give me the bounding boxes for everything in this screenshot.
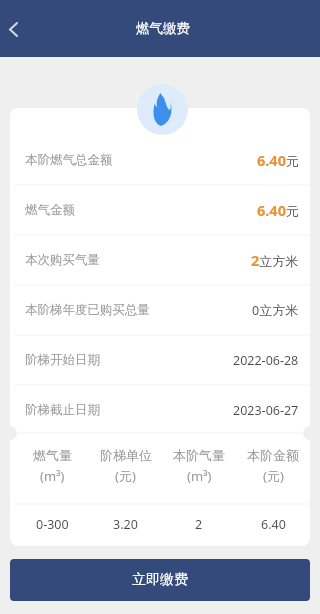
staticText: 本阶燃气总金额 [25,152,113,168]
staticText: (元) [263,467,284,485]
staticText: 0-300 [36,516,69,533]
staticText: 6.40元 [257,200,299,220]
staticText: (m³) [187,467,212,485]
button[interactable]: 立即缴费 [10,559,310,601]
staticText: 燃气金额 [25,202,75,218]
button[interactable]: Back [0,7,27,51]
staticText: (m³) [40,467,65,485]
staticText: 本阶气量 [173,447,225,463]
staticText: 立即缴费 [132,571,188,589]
staticText: (元) [115,467,136,485]
staticText: 6.40 [261,516,286,533]
staticText: 0立方米 [252,302,299,319]
staticText: 2023-06-27 [233,402,299,419]
staticText: 本阶金额 [247,447,299,463]
staticText: 3.20 [113,516,138,533]
staticText: 阶梯截止日期 [25,402,100,418]
staticText: 燃气量 [33,447,72,463]
staticText: 阶梯开始日期 [25,352,100,368]
staticText: 2 [195,516,203,533]
staticText: 本次购买气量 [25,252,100,268]
staticText: 阶梯单位 [100,447,152,463]
staticText: 本阶梯年度已购买总量 [25,302,150,318]
staticText: 2立方米 [251,250,299,270]
staticText: 6.40元 [257,150,299,170]
staticText: 2022-06-28 [233,352,299,369]
staticText: 燃气缴费 [136,20,190,37]
